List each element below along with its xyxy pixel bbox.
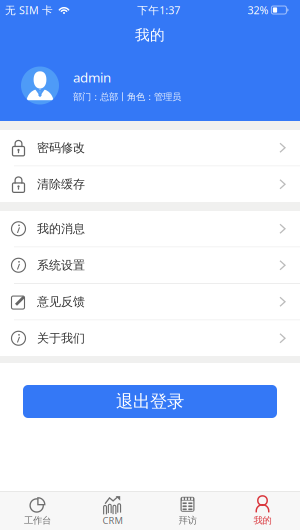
button[interactable]: 我的 [225,492,300,530]
button[interactable]: 系统设置 [0,247,300,283]
staticText: 我的 [135,26,165,44]
button[interactable]: 我的消息 [0,211,300,246]
staticText: 意见反馈 [37,294,85,309]
staticText: 退出登录 [116,391,184,412]
staticText: 工作台 [24,515,51,526]
staticText: 关于我们 [37,331,85,346]
staticText: 密码修改 [37,140,85,155]
button[interactable]: 意见反馈 [0,284,300,319]
staticText: 清除缓存 [37,177,85,192]
staticText: 我的 [253,515,271,526]
button[interactable]: 清除缓存 [0,166,300,202]
staticText: 拜访 [178,515,196,526]
staticText: 系统设置 [37,258,85,273]
button[interactable]: 拜访 [150,492,225,530]
button[interactable]: 密码修改 [0,130,300,165]
staticText: 部门：总部丨角色：管理员 [73,91,181,103]
button[interactable]: 工作台 [0,492,75,530]
staticText: 32% [247,3,268,17]
button[interactable]: 关于我们 [0,320,300,356]
staticText: CRM [102,514,122,527]
staticText: admin [73,68,111,86]
button[interactable]: CRM [75,492,150,530]
staticText: 无 SIM 卡 [5,3,53,17]
staticText: 我的消息 [37,221,85,236]
button[interactable]: 退出登录 [23,385,277,418]
staticText: 下午1:37 [137,3,180,17]
